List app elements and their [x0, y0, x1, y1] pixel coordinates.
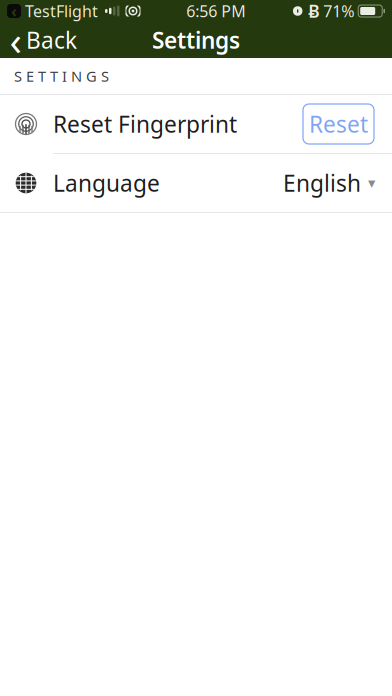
staticText: Ƀ: [308, 0, 319, 22]
staticText: 6:56 PM: [186, 0, 246, 22]
button[interactable]: Reset Fingerprint: [0, 95, 392, 153]
staticText: ‹: [9, 13, 21, 66]
staticText: S E T T I N G S: [14, 66, 109, 86]
button[interactable]: ‹: [0, 22, 87, 58]
staticText: ‹: [11, 0, 17, 22]
staticText: English: [283, 168, 361, 198]
staticText: 71%: [323, 0, 354, 22]
staticText: Settings: [152, 25, 240, 55]
staticText: Back: [26, 25, 77, 55]
staticText: Language: [53, 168, 160, 198]
staticText: TestFlight: [25, 0, 98, 22]
staticText: Reset Fingerprint: [53, 109, 237, 139]
button[interactable]: Language: [0, 154, 392, 212]
staticText: ▾: [368, 175, 375, 191]
staticText: Reset: [309, 109, 368, 139]
